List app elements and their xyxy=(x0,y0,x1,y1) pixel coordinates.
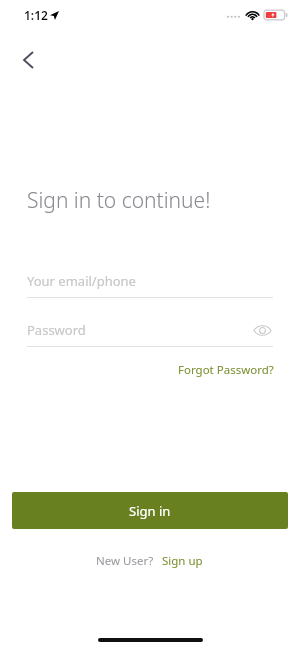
staticText: New User? xyxy=(96,553,154,569)
button[interactable]: Your email/phone xyxy=(27,270,273,298)
staticText: Password xyxy=(27,321,251,339)
button[interactable]: Show password xyxy=(251,319,273,341)
staticText: 1:12 xyxy=(24,7,48,23)
button[interactable]: Password xyxy=(27,319,273,341)
staticText: Your email/phone xyxy=(27,272,136,290)
button[interactable]: Sign in xyxy=(12,492,288,529)
staticText: Sign in xyxy=(129,502,171,520)
button[interactable]: Sign up xyxy=(160,550,205,572)
staticText: Sign in to continue! xyxy=(27,186,211,215)
button[interactable]: Forgot Password? xyxy=(174,359,278,381)
staticText: Sign up xyxy=(162,553,203,569)
staticText: Forgot Password? xyxy=(178,362,274,378)
button[interactable]: Back xyxy=(8,40,48,80)
